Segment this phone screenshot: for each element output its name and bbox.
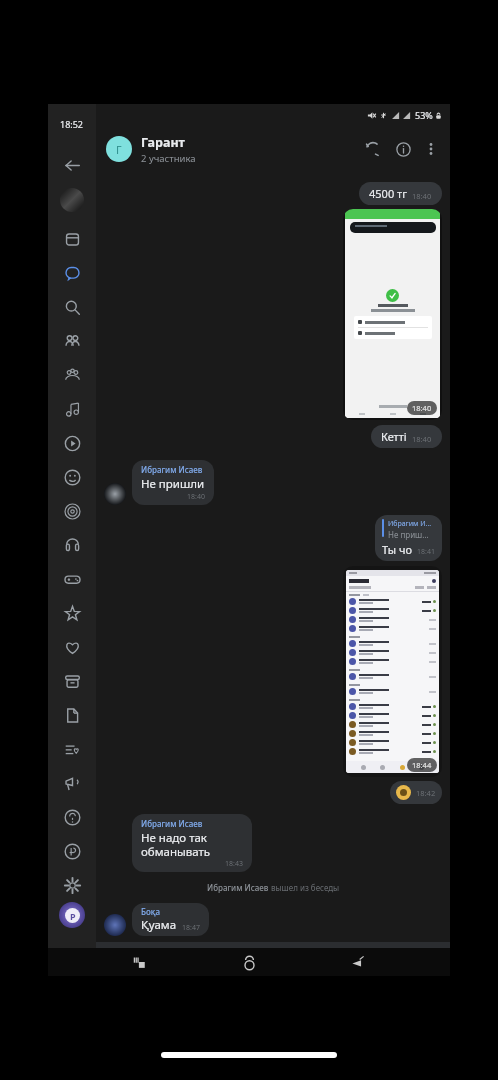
staticText: 18:41 xyxy=(417,547,435,557)
staticText: 53% xyxy=(415,109,433,121)
staticText: Ибрагим Исаев xyxy=(141,464,203,475)
button[interactable]: Groups xyxy=(48,358,96,392)
staticText: 18:40 xyxy=(412,191,432,201)
staticText: 2 участника xyxy=(141,152,196,165)
button[interactable]: Call xyxy=(358,134,388,164)
button[interactable]: Ибрагим Исаев avatar xyxy=(104,483,126,505)
staticText: Не пришли xyxy=(141,476,205,492)
button[interactable]: Feed xyxy=(48,732,96,766)
button[interactable]: Music xyxy=(48,392,96,426)
button[interactable]: Back xyxy=(48,148,96,182)
button[interactable]: Ибрагим Исаев xyxy=(132,814,252,872)
button[interactable]: Info xyxy=(388,134,418,164)
button[interactable]: Transfer history screenshot xyxy=(343,566,442,777)
staticText: Ибрагим Исаев xyxy=(207,882,271,893)
staticText: 18:52 xyxy=(60,118,84,130)
staticText: Сообщение xyxy=(135,951,201,967)
staticText: Ты чо xyxy=(382,542,413,557)
button[interactable]: Home xyxy=(232,948,266,976)
button[interactable]: Ибрагим Исаев xyxy=(132,460,214,505)
button[interactable]: Podcasts xyxy=(48,528,96,562)
button[interactable]: Payment receipt screenshot xyxy=(343,209,442,420)
button[interactable]: 4500 тг xyxy=(359,182,442,205)
staticText: Боқа xyxy=(141,906,160,917)
button[interactable]: Ибрагим Исаев xyxy=(104,882,442,893)
button[interactable]: Сообщение xyxy=(135,951,391,967)
staticText: Қуама xyxy=(141,917,177,933)
staticText: 18:47 xyxy=(182,923,200,933)
button[interactable]: Back xyxy=(341,948,375,976)
button[interactable]: Settings xyxy=(48,868,96,902)
button[interactable]: Chat avatar xyxy=(106,136,132,162)
button[interactable]: Ибрагим И... xyxy=(375,515,442,561)
staticText: 18:42 xyxy=(416,788,436,798)
button[interactable]: Archive xyxy=(48,222,96,256)
button[interactable]: Profile xyxy=(60,188,84,212)
staticText: Ибрагим Исаев xyxy=(141,818,203,829)
button[interactable]: Video xyxy=(48,426,96,460)
staticText: Ибрагим И... xyxy=(388,519,432,529)
button[interactable]: Live xyxy=(48,494,96,528)
button[interactable]: More options xyxy=(418,136,444,162)
button[interactable]: Friends xyxy=(48,324,96,358)
staticText: Не надо так обманывать xyxy=(141,830,243,859)
button[interactable]: Bookmarks xyxy=(48,596,96,630)
button[interactable]: Help xyxy=(48,800,96,834)
button[interactable]: Payments xyxy=(48,834,96,868)
button[interactable]: Stickers xyxy=(48,460,96,494)
button[interactable]: Search xyxy=(48,290,96,324)
button[interactable]: Боқа avatar xyxy=(104,914,126,936)
button[interactable]: 18:42 xyxy=(390,781,442,804)
button[interactable]: Docs xyxy=(48,698,96,732)
staticText: 18:40 xyxy=(412,403,432,413)
button[interactable]: Market xyxy=(48,664,96,698)
button[interactable]: Games xyxy=(48,562,96,596)
staticText: Кетті xyxy=(381,429,407,444)
staticText: Г xyxy=(116,142,122,157)
staticText: 18:44 xyxy=(412,760,432,770)
staticText: Не приш... xyxy=(388,529,429,540)
button[interactable]: Recents xyxy=(123,948,157,976)
staticText: 18:40 xyxy=(412,434,432,444)
staticText: Гарант xyxy=(141,134,185,151)
staticText: вышел из беседы xyxy=(271,882,340,893)
staticText: 4500 тг xyxy=(369,186,407,201)
button[interactable]: Кетті xyxy=(371,425,442,448)
button[interactable]: Likes xyxy=(48,630,96,664)
button[interactable]: Messages xyxy=(48,256,96,290)
button[interactable]: Ads xyxy=(48,766,96,800)
button[interactable]: VK Pay xyxy=(59,902,85,928)
staticText: 18:40 xyxy=(187,492,205,502)
button[interactable]: Боқа xyxy=(132,903,209,936)
staticText: 18:43 xyxy=(225,859,243,869)
staticText: P xyxy=(70,910,76,922)
